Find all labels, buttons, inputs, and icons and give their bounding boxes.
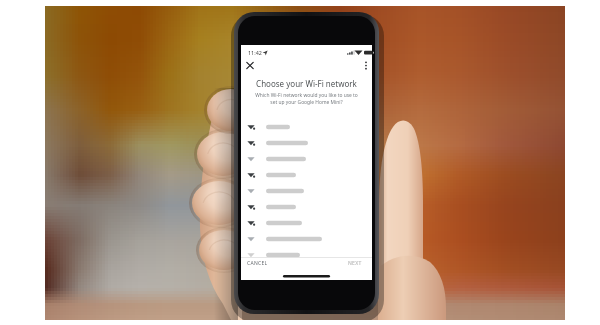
staticText: 11:42 [248, 49, 262, 56]
button[interactable] [241, 152, 372, 168]
button[interactable] [241, 200, 372, 216]
staticText: Choose your Wi-Fi network [256, 78, 357, 89]
button[interactable] [241, 168, 372, 184]
staticText: CANCEL [247, 260, 268, 267]
button[interactable]: Close [244, 58, 260, 74]
button[interactable] [241, 136, 372, 152]
staticText: NEXT [348, 260, 362, 267]
button[interactable] [241, 232, 372, 248]
button[interactable]: CANCEL [247, 260, 268, 267]
button[interactable]: More options [360, 58, 374, 74]
button[interactable] [241, 184, 372, 200]
button[interactable] [241, 216, 372, 232]
button[interactable] [241, 120, 372, 136]
staticText: Which Wi-Fi network would you like to us… [255, 92, 358, 106]
button[interactable]: NEXT [348, 260, 362, 267]
button[interactable] [241, 248, 372, 264]
